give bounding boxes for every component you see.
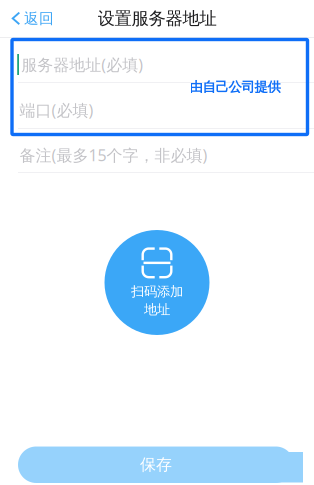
staticText: 备注(最多15个字，非必填) [19,144,207,166]
staticText: 服务器地址(必填) [21,54,143,75]
button[interactable]: 端口(必填) [0,83,314,128]
staticText: 设置服务器地址 [97,8,216,29]
staticText: 扫码添加 [131,283,183,300]
staticText: 保存 [140,455,172,475]
staticText: 返回 [24,9,54,27]
button[interactable]: 扫码添加 [104,230,209,335]
button[interactable]: 返回 [0,0,66,37]
button[interactable]: 备注(最多15个字，非必填) [0,129,314,172]
staticText: 端口(必填) [19,99,93,121]
staticText: 由自己公司提供 [189,79,280,95]
button[interactable]: 服务器地址(必填) [0,38,314,82]
staticText: 地址 [144,301,170,318]
button[interactable]: 保存 [18,446,303,483]
